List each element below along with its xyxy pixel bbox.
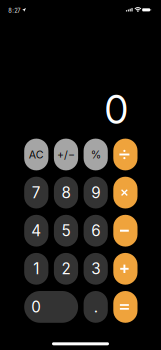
button[interactable]: 1 bbox=[24, 253, 48, 285]
button[interactable]: 5 bbox=[54, 215, 78, 247]
button[interactable]: All Clear bbox=[24, 139, 48, 170]
staticText: AC bbox=[29, 148, 44, 161]
button[interactable]: 8 bbox=[54, 177, 78, 208]
button[interactable]: 9 bbox=[84, 177, 108, 208]
button[interactable]: 3 bbox=[84, 253, 108, 285]
button[interactable]: 7 bbox=[24, 177, 48, 208]
staticText: 1 bbox=[33, 260, 39, 278]
staticText: 7 bbox=[32, 183, 41, 202]
staticText: 3 bbox=[91, 260, 100, 278]
staticText: . bbox=[94, 298, 98, 316]
staticText: 0 bbox=[104, 87, 128, 133]
staticText: 0 bbox=[31, 298, 41, 316]
button[interactable]: Divide bbox=[113, 139, 137, 170]
staticText: 2 bbox=[61, 260, 70, 278]
button[interactable]: Decimal Point bbox=[84, 291, 108, 323]
button[interactable]: Equals bbox=[113, 291, 137, 323]
staticText: 4 bbox=[31, 221, 41, 240]
staticText: 9 bbox=[91, 183, 100, 202]
button[interactable]: 4 bbox=[24, 215, 48, 247]
staticText: +/− bbox=[57, 148, 75, 161]
button[interactable]: Multiply bbox=[113, 177, 137, 208]
button[interactable]: Plus bbox=[113, 253, 137, 285]
button[interactable]: Minus bbox=[113, 215, 137, 247]
button[interactable]: 6 bbox=[84, 215, 108, 247]
button[interactable]: 0 bbox=[24, 291, 78, 323]
staticText: 5 bbox=[61, 221, 70, 240]
button[interactable]: 2 bbox=[54, 253, 78, 285]
staticText: 8:27 bbox=[8, 7, 20, 14]
button[interactable]: Plus Minus bbox=[54, 139, 78, 170]
staticText: 6 bbox=[91, 221, 100, 240]
staticText: % bbox=[91, 148, 101, 161]
button[interactable]: Percent bbox=[84, 139, 108, 170]
staticText: 8 bbox=[61, 183, 70, 202]
